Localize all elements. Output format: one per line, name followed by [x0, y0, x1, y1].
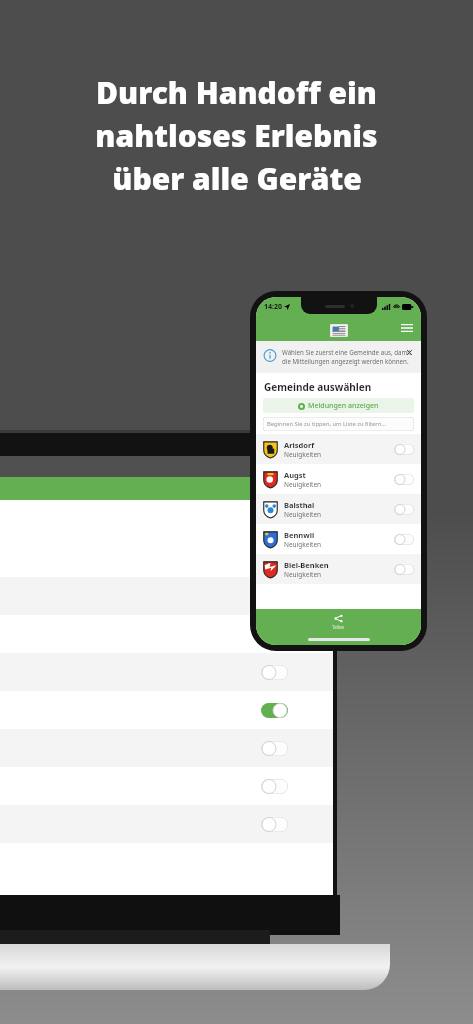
button[interactable]: Menü: [399, 320, 415, 336]
button[interactable]: Schliessen: [405, 348, 414, 357]
button[interactable]: Aus: [261, 817, 288, 832]
button[interactable]: Aus: [394, 564, 414, 575]
staticText: Durch Handoff ein: [96, 72, 377, 113]
button[interactable]: Aus: [261, 665, 288, 680]
button[interactable]: Aus: [394, 444, 414, 455]
button[interactable]: Biel-Benken: [263, 554, 414, 584]
button[interactable]: Aus: [261, 741, 288, 756]
button[interactable]: Teilen: [332, 614, 345, 630]
button[interactable]: Ein: [0, 691, 333, 729]
staticText: Neuigkeiten: [284, 570, 322, 579]
staticText: Beginnen Sie zu tippen, um Liste zu filt…: [267, 420, 387, 428]
button[interactable]: Ein: [0, 577, 333, 615]
staticText: Teilen: [332, 624, 345, 630]
button[interactable]: Beginnen Sie zu tippen, um Liste zu filt…: [263, 417, 414, 431]
staticText: über alle Geräte: [112, 158, 362, 199]
button[interactable]: Augst: [263, 464, 414, 494]
button[interactable]: Aus: [394, 474, 414, 485]
button[interactable]: Meldungen anzeigen: [263, 398, 414, 413]
button[interactable]: [0, 500, 333, 555]
staticText: Gemeinde auswählen: [264, 380, 372, 394]
staticText: Bennwil: [284, 530, 315, 540]
button[interactable]: Aus: [0, 615, 333, 653]
staticText: Wählen Sie zuerst eine Gemeinde aus, dam…: [282, 348, 414, 366]
button[interactable]: Aus: [261, 627, 288, 642]
staticText: nahtloses Erlebnis: [95, 115, 378, 156]
button[interactable]: Aus: [394, 534, 414, 545]
button[interactable]: Arisdorf: [263, 434, 414, 464]
button[interactable]: Aus: [394, 504, 414, 515]
button[interactable]: Aus: [261, 779, 288, 794]
staticText: Neuigkeiten: [284, 450, 322, 459]
staticText: Neuigkeiten: [284, 480, 322, 489]
staticText: Biel-Benken: [284, 560, 329, 570]
button[interactable]: Bennwil: [263, 524, 414, 554]
staticText: Balsthal: [284, 500, 315, 510]
staticText: Meldungen anzeigen: [308, 401, 379, 411]
staticText: Arisdorf: [284, 440, 315, 450]
staticText: Neuigkeiten: [284, 510, 322, 519]
button[interactable]: [0, 555, 333, 577]
button[interactable]: Balsthal: [263, 494, 414, 524]
staticText: 14:20: [264, 302, 282, 312]
staticText: Augst: [284, 470, 306, 480]
button[interactable]: Ein: [261, 703, 288, 718]
staticText: Neuigkeiten: [284, 540, 322, 549]
